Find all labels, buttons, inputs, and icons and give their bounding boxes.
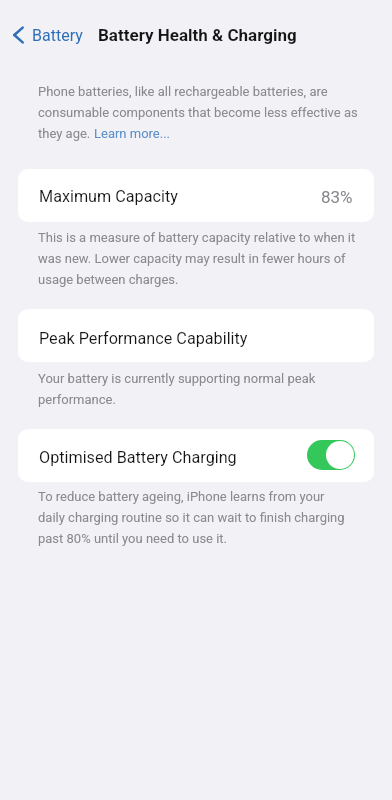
button[interactable]: Maximum Capacity [18, 169, 374, 222]
staticText: 83% [321, 187, 353, 207]
staticText: Your battery is currently supporting nor… [38, 371, 316, 407]
button[interactable]: Back to Battery [10, 21, 86, 49]
staticText: This is a measure of battery capacity re… [38, 230, 356, 287]
button[interactable]: Optimised Battery Charging [18, 429, 374, 482]
staticText: Battery Health & Charging [98, 25, 297, 45]
button[interactable]: Learn more... [94, 126, 171, 141]
staticText: Phone batteries, like all rechargeable b… [38, 84, 358, 120]
staticText: Peak Performance Capability [39, 329, 248, 348]
button[interactable]: Peak Performance Capability [18, 309, 374, 362]
staticText: Battery [32, 26, 83, 45]
button[interactable]: Optimised Battery Charging, on [307, 440, 355, 470]
staticText: Maximum Capacity [39, 187, 178, 206]
staticText: they age. [38, 126, 91, 141]
staticText: Optimised Battery Charging [39, 448, 237, 467]
staticText: To reduce battery ageing, iPhone learns … [38, 489, 345, 546]
